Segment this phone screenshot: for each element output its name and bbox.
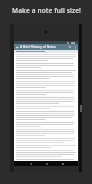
button[interactable]: Search [67,44,73,50]
button[interactable]: Home [43,161,50,166]
button[interactable]: Recent apps [59,161,66,166]
button[interactable]: More options [73,44,78,50]
staticText: A Brief History of Notes [20,45,56,49]
button[interactable] [14,50,78,161]
button[interactable]: A Brief History of Notes [20,44,67,50]
button[interactable]: Back [27,161,34,166]
button[interactable]: Back [14,44,20,50]
staticText: Make a note full size! [12,6,81,15]
